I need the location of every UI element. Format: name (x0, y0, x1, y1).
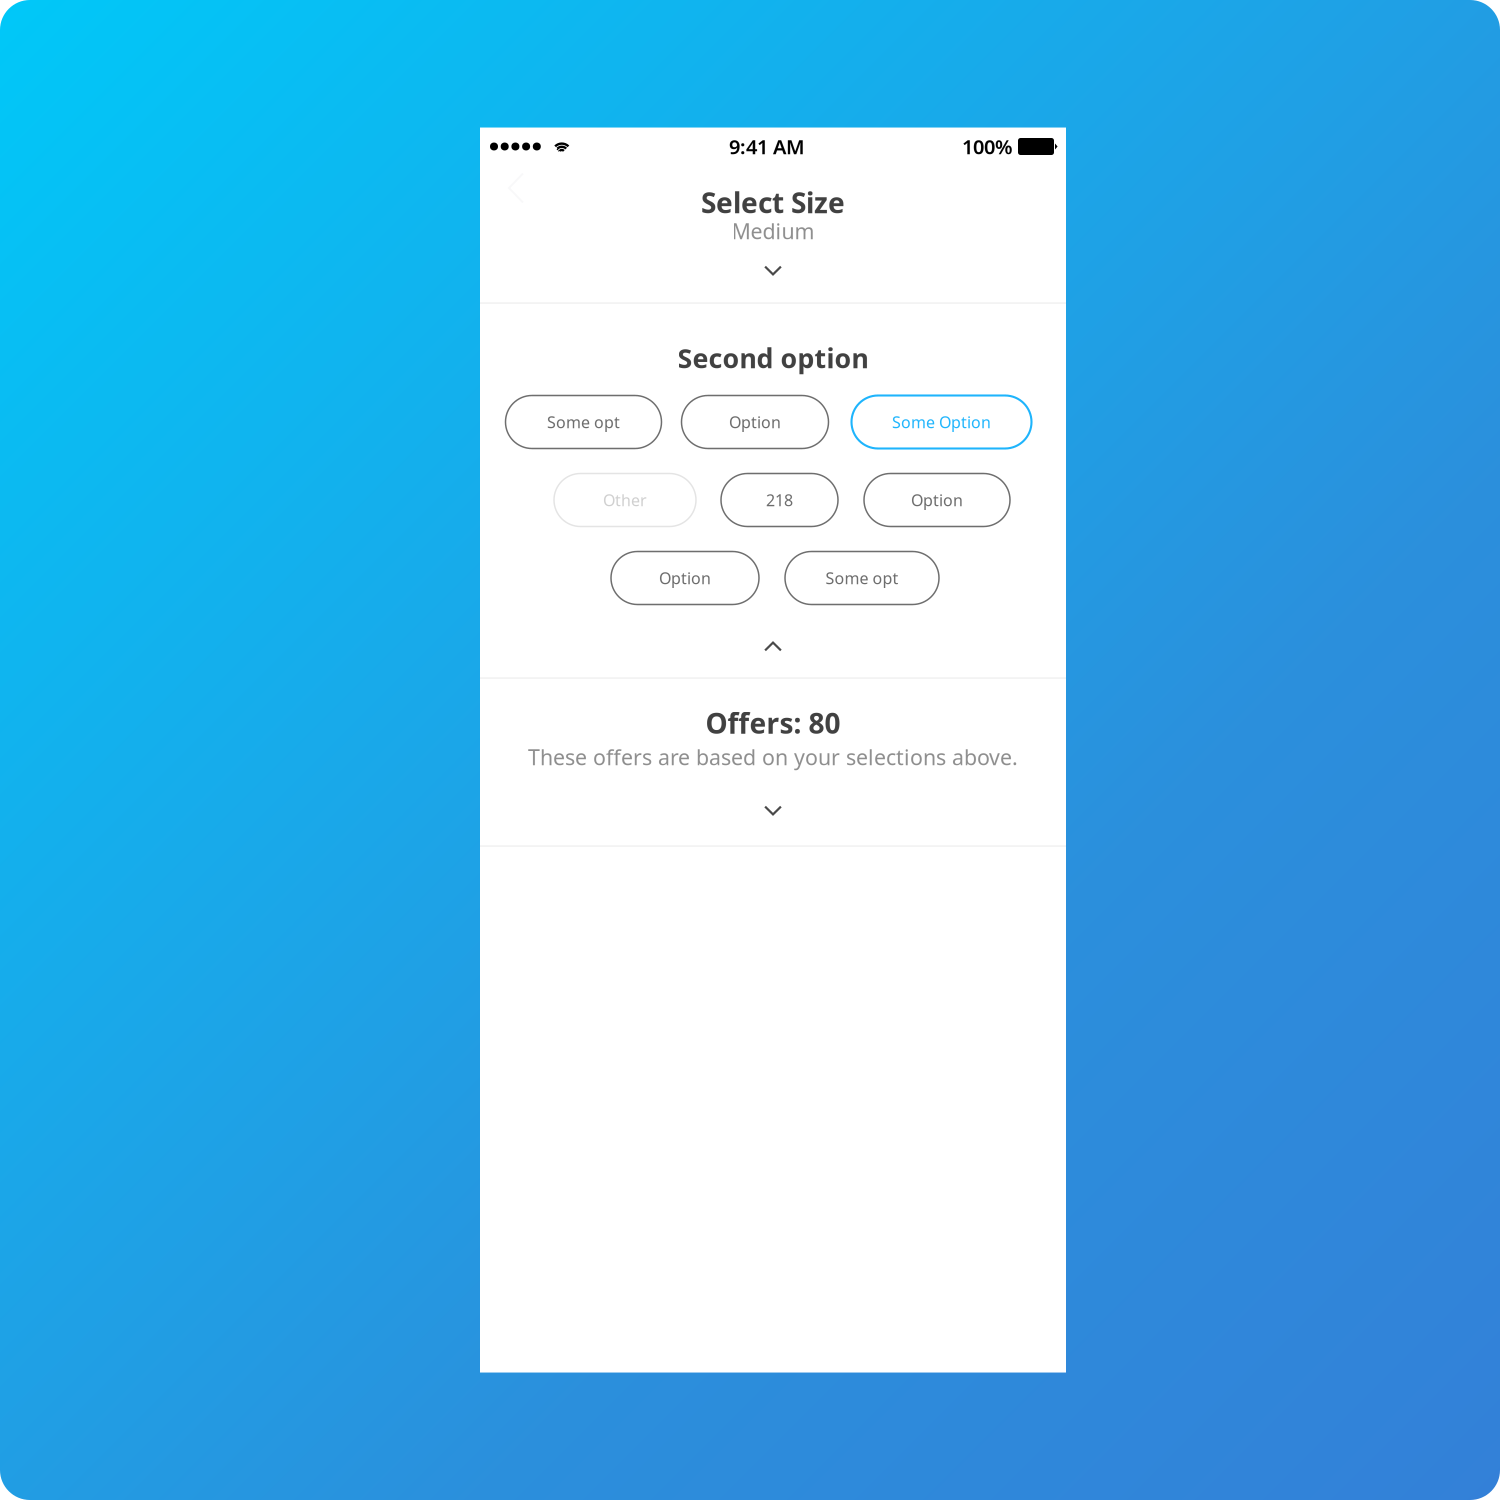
button[interactable]: Option (864, 473, 1010, 526)
button[interactable]: 218 (721, 473, 838, 526)
staticText: Some Option (892, 411, 991, 433)
button[interactable]: Some opt (785, 551, 939, 604)
staticText: Offers: 80 (705, 704, 840, 742)
button[interactable]: Option (611, 551, 759, 604)
staticText: These offers are based on your selection… (528, 743, 1018, 771)
button[interactable]: Offers: 80 (480, 678, 1066, 845)
staticText: Medium (731, 217, 814, 245)
staticText: 100% (962, 133, 1013, 160)
staticText: 9:41 AM (729, 133, 805, 160)
staticText: Option (729, 411, 781, 433)
staticText: Option (659, 567, 711, 589)
staticText: Second option (677, 340, 868, 376)
button[interactable]: Select Size (480, 165, 1066, 302)
staticText: Select Size (701, 184, 845, 221)
staticText: Other (603, 489, 647, 511)
button[interactable]: Collapse second option section (480, 604, 1066, 677)
staticText: 218 (766, 489, 793, 511)
button[interactable]: Back (480, 127, 542, 213)
staticText: Some opt (547, 411, 620, 433)
staticText: Option (911, 489, 963, 511)
staticText: Some opt (825, 567, 898, 589)
button[interactable]: Some opt (505, 395, 661, 448)
button[interactable]: Other (554, 473, 696, 526)
button[interactable]: Some Option (851, 395, 1031, 448)
button[interactable]: Option (681, 395, 828, 448)
